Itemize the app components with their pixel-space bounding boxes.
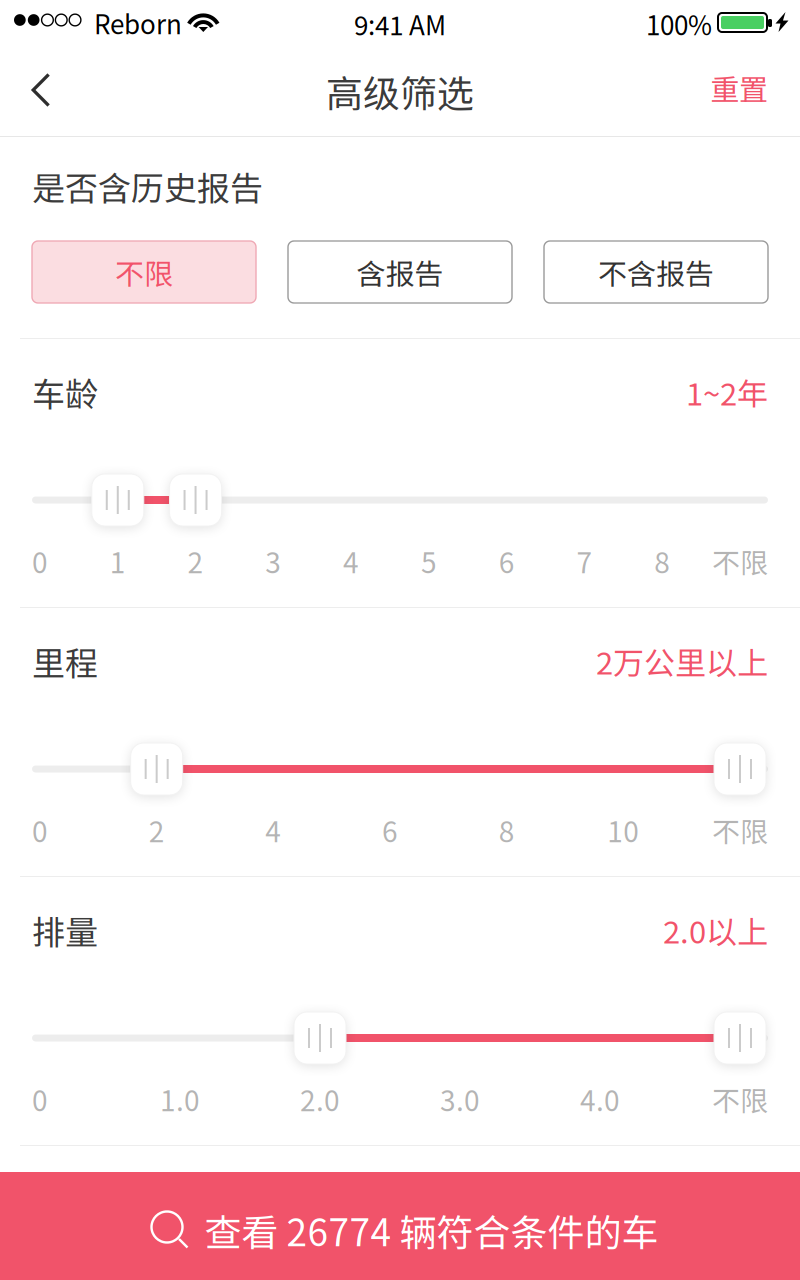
staticText: 9:41 AM bbox=[354, 5, 446, 43]
staticText: 2.0 bbox=[300, 1079, 340, 1119]
staticText: 不限 bbox=[712, 541, 768, 581]
button[interactable]: 不含报告 bbox=[544, 241, 768, 303]
staticText: 2 bbox=[188, 541, 204, 581]
staticText: 1 bbox=[110, 541, 126, 581]
staticText: 1.0 bbox=[160, 1079, 200, 1119]
staticText: 是否含历史报告 bbox=[32, 162, 263, 210]
button[interactable]: 不限 bbox=[32, 241, 256, 303]
staticText: 3.0 bbox=[440, 1079, 480, 1119]
staticText: 3 bbox=[265, 541, 281, 581]
staticText: 4.0 bbox=[580, 1079, 620, 1119]
staticText: 里程 bbox=[32, 637, 98, 685]
staticText: 0 bbox=[32, 1079, 48, 1119]
staticText: 100% bbox=[646, 5, 712, 43]
button[interactable]: 含报告 bbox=[288, 241, 512, 303]
button[interactable]: Back bbox=[0, 57, 96, 136]
staticText: 高级筛选 bbox=[326, 64, 474, 118]
staticText: 1~2年 bbox=[686, 370, 768, 414]
staticText: 5 bbox=[421, 541, 437, 581]
staticText: 不含报告 bbox=[598, 251, 714, 293]
staticText: 不限 bbox=[712, 810, 768, 850]
staticText: 不限 bbox=[712, 1079, 768, 1119]
staticText: 不限 bbox=[115, 251, 173, 293]
staticText: 排量 bbox=[32, 906, 98, 954]
staticText: 0 bbox=[32, 810, 48, 850]
staticText: Reborn bbox=[94, 4, 182, 42]
staticText: 车龄 bbox=[32, 368, 98, 416]
staticText: 2.0以上 bbox=[663, 908, 768, 952]
staticText: 8 bbox=[499, 810, 515, 850]
staticText: 查看 26774 辆符合条件的车 bbox=[204, 1203, 658, 1257]
staticText: 含报告 bbox=[356, 251, 443, 293]
button[interactable]: 查看 26774 辆符合条件的车 bbox=[0, 1172, 800, 1280]
button[interactable]: 重置 bbox=[700, 48, 800, 127]
staticText: 7 bbox=[576, 541, 592, 581]
staticText: 重置 bbox=[710, 66, 768, 108]
staticText: 6 bbox=[382, 810, 398, 850]
staticText: 0 bbox=[32, 541, 48, 581]
staticText: 4 bbox=[343, 541, 359, 581]
staticText: 6 bbox=[499, 541, 515, 581]
staticText: 2万公里以上 bbox=[596, 639, 768, 683]
staticText: 10 bbox=[607, 810, 639, 850]
staticText: 8 bbox=[654, 541, 670, 581]
staticText: 4 bbox=[265, 810, 281, 850]
staticText: 2 bbox=[149, 810, 165, 850]
